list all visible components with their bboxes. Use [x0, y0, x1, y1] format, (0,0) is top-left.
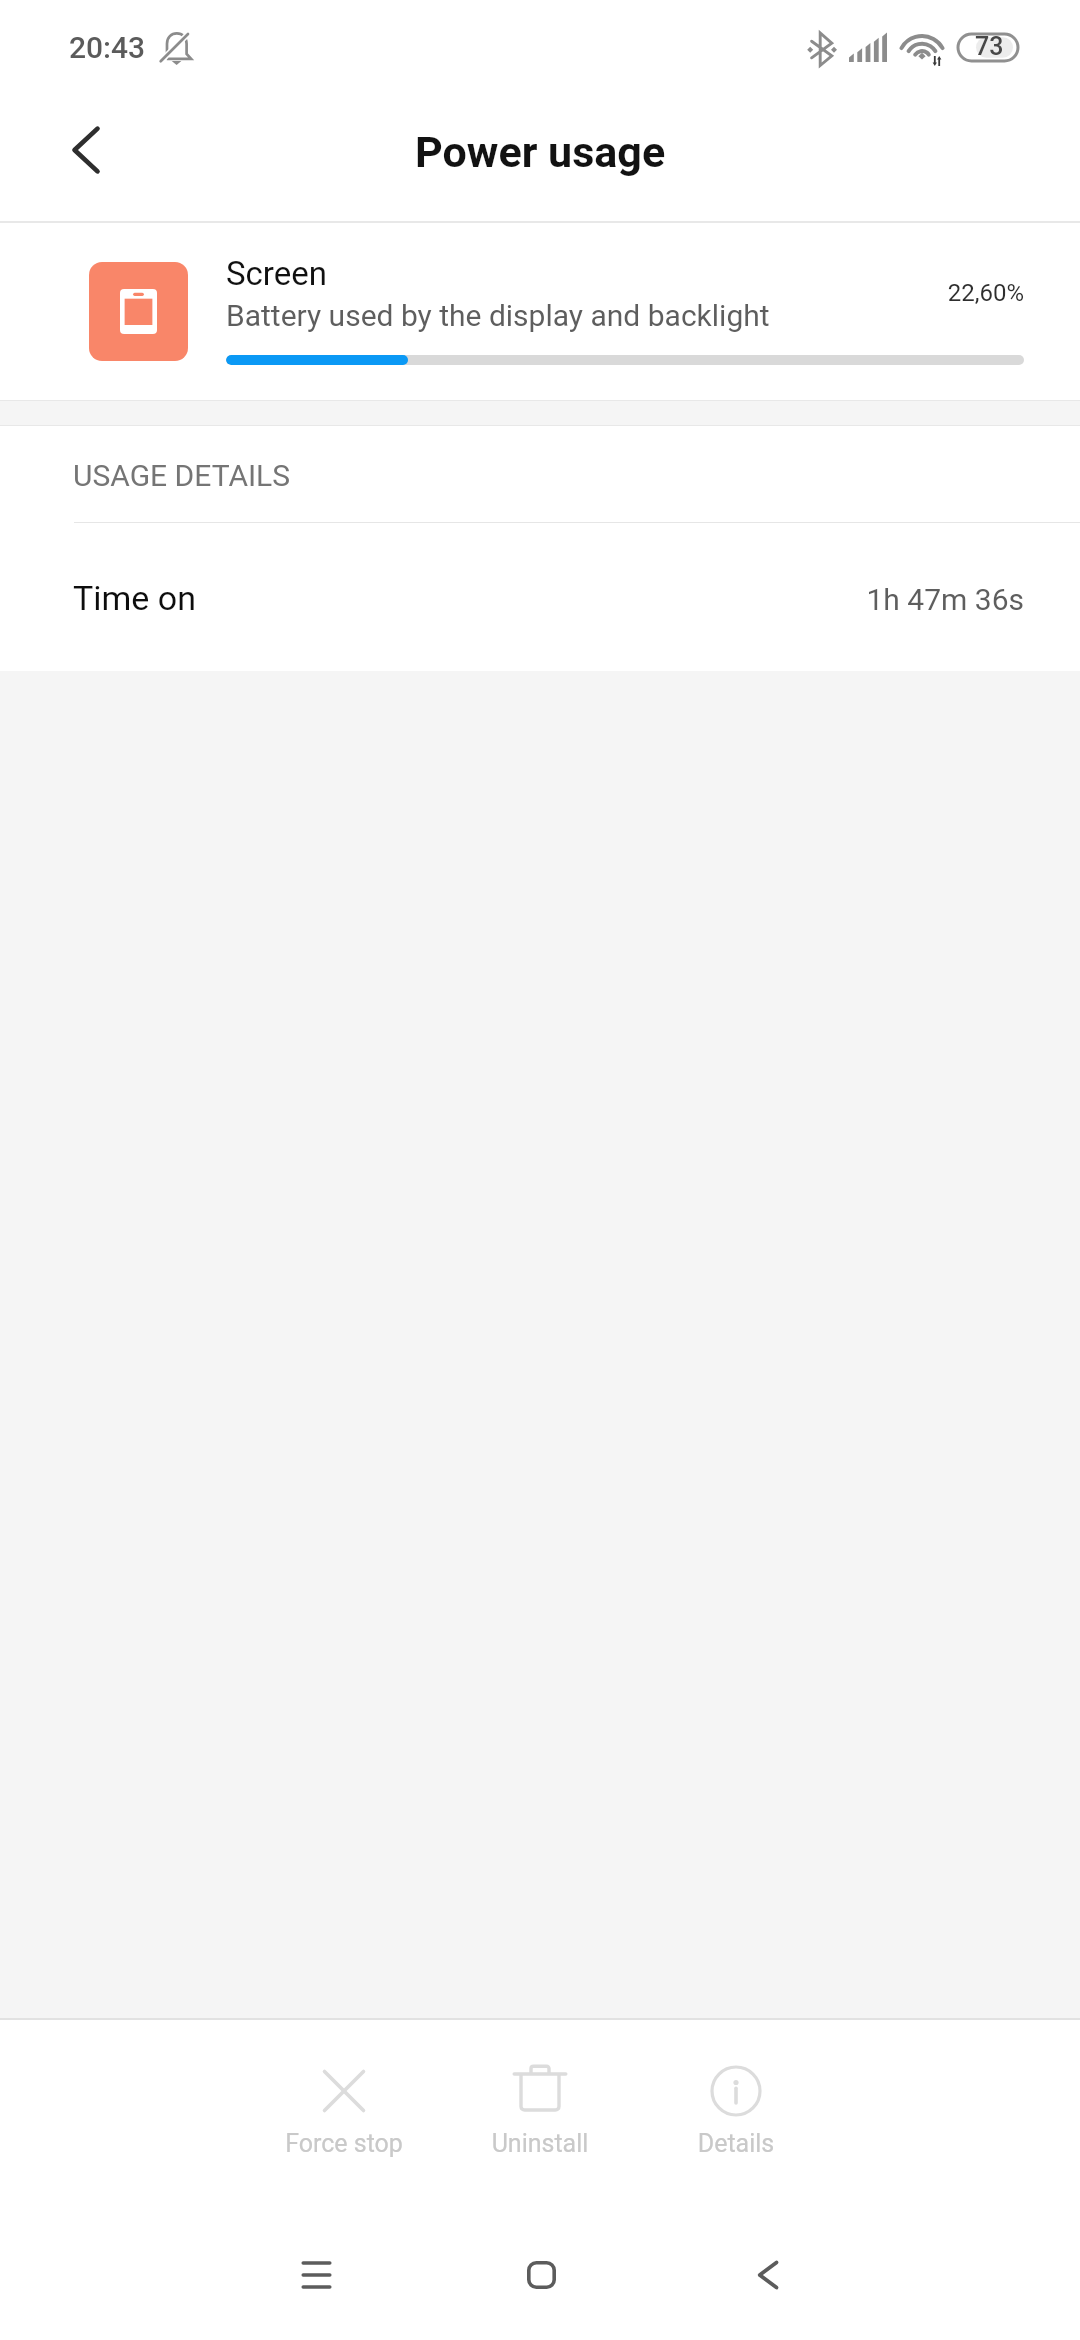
staticText: 73 — [975, 32, 1004, 59]
button[interactable]: Back — [705, 2225, 825, 2325]
staticText: 1h 47m 36s — [804, 582, 1024, 617]
staticText: Force stop — [246, 2129, 442, 2158]
staticText: Battery used by the display and backligh… — [226, 298, 770, 333]
staticText: Details — [638, 2129, 834, 2158]
button[interactable]: Back — [36, 100, 136, 200]
staticText: USAGE DETAILS — [73, 458, 291, 493]
button[interactable]: Screen — [0, 223, 1080, 400]
button[interactable]: Uninstall — [442, 2046, 638, 2171]
staticText: Screen — [226, 254, 327, 293]
staticText: Power usage — [415, 127, 666, 177]
staticText: Uninstall — [442, 2129, 638, 2158]
staticText: Time on — [73, 578, 197, 618]
button[interactable]: Time on — [0, 524, 1080, 671]
button[interactable]: Details — [638, 2046, 834, 2171]
button[interactable]: Force stop — [246, 2046, 442, 2171]
staticText: 22,60% — [804, 279, 1024, 307]
button[interactable]: Home — [481, 2225, 601, 2325]
button[interactable]: Recents — [256, 2225, 376, 2325]
staticText: 20:43 — [69, 30, 146, 65]
